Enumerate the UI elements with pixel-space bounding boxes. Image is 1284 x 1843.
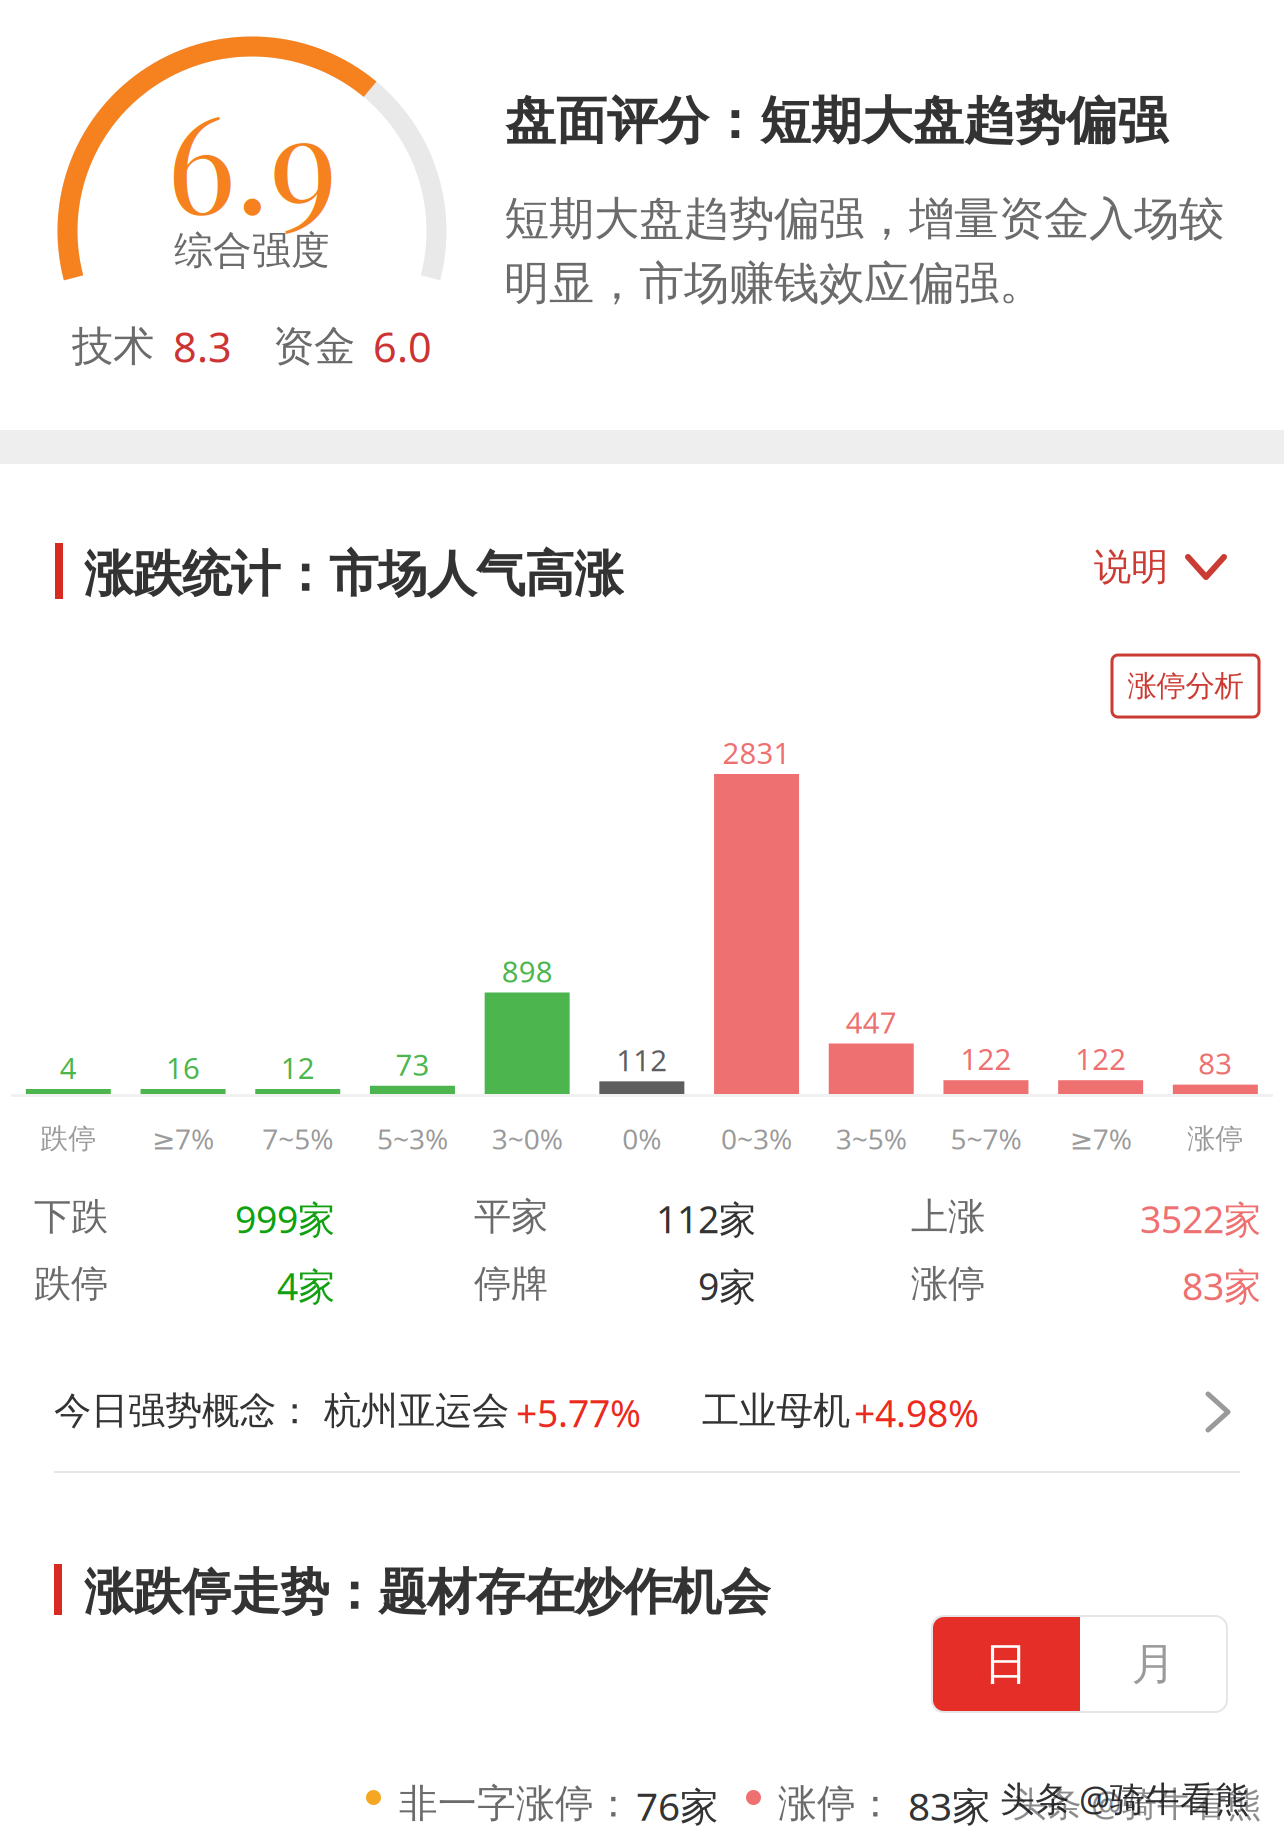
- staticText: 资金: [273, 321, 355, 372]
- staticText: 73: [395, 1045, 429, 1084]
- staticText: 涨停：: [778, 1780, 895, 1827]
- staticText: 8.3: [173, 319, 232, 374]
- staticText: 0~3%: [721, 1120, 792, 1157]
- button[interactable]: 月: [1080, 1616, 1227, 1712]
- staticText: 日: [984, 1637, 1028, 1691]
- staticText: 898: [502, 951, 553, 990]
- staticText: 5~7%: [950, 1120, 1021, 1157]
- staticText: 2831: [723, 733, 791, 772]
- staticText: 涨跌停走势：题材存在炒作机会: [84, 1562, 770, 1623]
- staticText: 工业母机: [702, 1388, 850, 1434]
- staticText: 3~0%: [492, 1120, 563, 1157]
- staticText: +4.98%: [854, 1388, 979, 1438]
- staticText: 涨停: [911, 1261, 985, 1307]
- staticText: 7~5%: [262, 1120, 333, 1157]
- staticText: 综合强度: [174, 227, 330, 274]
- staticText: 3~5%: [836, 1120, 907, 1157]
- staticText: 短期大盘趋势偏强，增量资金入场较明显，市场赚钱效应偏强。: [504, 191, 1224, 311]
- staticText: 83家: [908, 1780, 991, 1831]
- staticText: 16: [166, 1048, 200, 1087]
- staticText: ≥7%: [152, 1120, 214, 1157]
- staticText: 下跌: [34, 1194, 108, 1240]
- staticText: 6.0: [373, 319, 432, 374]
- staticText: 122: [960, 1039, 1011, 1078]
- staticText: 今日强势概念：: [54, 1388, 313, 1434]
- button[interactable]: 说明: [1068, 532, 1228, 602]
- staticText: 4家: [277, 1261, 335, 1311]
- staticText: 447: [846, 1002, 897, 1041]
- staticText: 12: [281, 1048, 315, 1087]
- staticText: 112家: [656, 1194, 756, 1244]
- staticText: 4: [60, 1048, 77, 1087]
- staticText: 跌停: [34, 1261, 108, 1307]
- staticText: 122: [1075, 1039, 1126, 1078]
- button[interactable]: 日: [932, 1616, 1080, 1712]
- staticText: 涨停: [1187, 1121, 1243, 1156]
- staticText: 头条 @骑牛看熊: [1000, 1775, 1250, 1821]
- staticText: 停牌: [474, 1261, 548, 1307]
- staticText: 月: [1131, 1637, 1175, 1691]
- staticText: 说明: [1094, 544, 1168, 590]
- staticText: 9家: [698, 1261, 756, 1311]
- staticText: 999家: [235, 1194, 335, 1244]
- staticText: 83家: [1182, 1261, 1261, 1311]
- staticText: +5.77%: [516, 1388, 641, 1438]
- staticText: 头条 @骑牛看熊: [1012, 1780, 1262, 1826]
- staticText: 技术: [72, 321, 154, 372]
- staticText: 5~3%: [377, 1120, 448, 1157]
- staticText: 非一字涨停：: [399, 1780, 633, 1827]
- button[interactable]: 涨停分析: [1112, 655, 1259, 717]
- staticText: ≥7%: [1070, 1120, 1132, 1157]
- staticText: 112: [616, 1040, 667, 1079]
- button[interactable]: 今日强势概念：: [54, 1375, 1240, 1471]
- staticText: 76家: [636, 1780, 719, 1831]
- staticText: 0%: [622, 1120, 661, 1157]
- staticText: 跌停: [40, 1121, 96, 1156]
- staticText: 6.9: [166, 69, 337, 247]
- staticText: 3522家: [1140, 1194, 1261, 1244]
- staticText: 上涨: [911, 1194, 985, 1240]
- staticText: 涨跌统计：市场人气高涨: [84, 544, 623, 605]
- staticText: 平家: [474, 1194, 548, 1240]
- staticText: 涨停分析: [1127, 668, 1243, 704]
- staticText: 83: [1198, 1044, 1232, 1083]
- staticText: 杭州亚运会: [324, 1388, 509, 1434]
- staticText: 盘面评分：短期大盘趋势偏强: [505, 90, 1168, 152]
